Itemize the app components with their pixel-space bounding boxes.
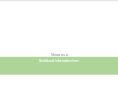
staticText: Nutritional information here [39,59,79,63]
staticText: Show us a [51,52,68,57]
button[interactable]: Nutritional information here [0,57,118,75]
